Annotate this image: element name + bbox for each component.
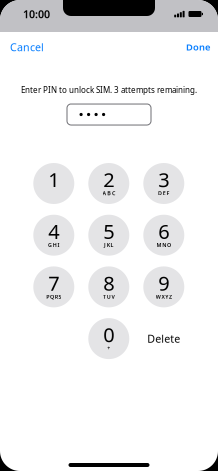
- staticText: 1: [48, 166, 59, 193]
- button[interactable]: 2: [88, 163, 129, 204]
- staticText: 0: [103, 321, 114, 348]
- staticText: WXYZ: [156, 293, 172, 300]
- button[interactable]: Cancel: [10, 37, 50, 57]
- staticText: 5: [103, 218, 114, 244]
- staticText: 2: [103, 166, 114, 193]
- button[interactable]: 1: [33, 163, 74, 204]
- staticText: Enter PIN to unlock SIM. 3 attempts rema…: [21, 85, 197, 95]
- staticText: +: [107, 345, 110, 352]
- staticText: 7: [48, 270, 59, 296]
- button[interactable]: 5: [88, 215, 129, 256]
- staticText: GHI: [48, 241, 59, 248]
- button[interactable]: Done: [180, 37, 210, 57]
- staticText: PQRS: [46, 293, 61, 300]
- staticText: 4: [48, 218, 59, 244]
- staticText: DEF: [158, 190, 170, 197]
- staticText: MNO: [157, 241, 171, 248]
- button[interactable]: 4: [33, 215, 74, 256]
- staticText: ABC: [102, 190, 115, 197]
- staticText: Delete: [147, 331, 180, 346]
- button[interactable]: 9: [143, 266, 184, 307]
- staticText: 8: [103, 270, 114, 296]
- staticText: 9: [158, 270, 169, 296]
- staticText: Cancel: [10, 40, 44, 54]
- button[interactable]: 3: [143, 163, 184, 204]
- staticText: 3: [158, 166, 169, 193]
- staticText: 6: [158, 218, 169, 244]
- button[interactable]: 6: [143, 215, 184, 256]
- staticText: Done: [186, 41, 210, 53]
- button[interactable]: Delete: [136, 318, 191, 359]
- button[interactable]: 0: [88, 318, 129, 359]
- staticText: 10:00: [23, 7, 50, 21]
- staticText: TUV: [103, 293, 114, 300]
- staticText: JKL: [104, 241, 113, 248]
- button[interactable]: 8: [88, 266, 129, 307]
- button[interactable]: 7: [33, 266, 74, 307]
